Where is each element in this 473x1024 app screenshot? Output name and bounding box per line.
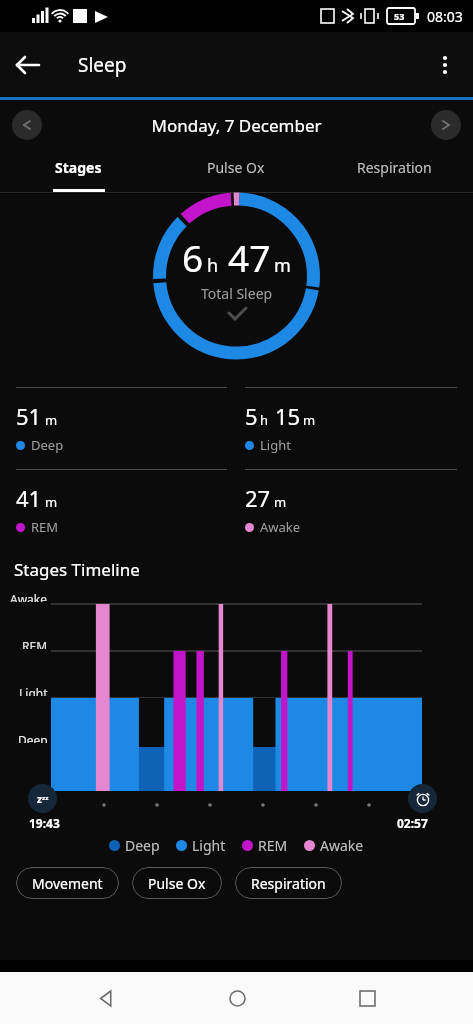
staticText: 51 — [16, 401, 42, 431]
button[interactable]: 27 — [245, 469, 457, 536]
staticText: 5 — [245, 401, 258, 431]
staticText: h — [260, 411, 269, 429]
staticText: Total Sleep — [201, 284, 273, 303]
staticText: Stages — [55, 158, 102, 177]
button[interactable]: Pulse Ox — [157, 156, 315, 192]
staticText: Stages Timeline — [14, 558, 140, 581]
staticText: m — [45, 493, 58, 511]
button[interactable]: Movement — [16, 867, 119, 899]
staticText: Awake — [10, 591, 48, 602]
staticText: REM — [258, 836, 288, 855]
staticText: 41 — [16, 483, 42, 513]
button[interactable]: Pulse Ox — [132, 867, 222, 899]
button[interactable]: 5 — [245, 387, 457, 454]
staticText: Respiration — [357, 158, 432, 177]
staticText: m — [274, 493, 287, 511]
staticText: Awake — [260, 518, 301, 536]
staticText: Awake — [320, 836, 364, 855]
staticText: Pulse Ox — [207, 158, 265, 177]
button[interactable]: Stages — [0, 156, 157, 192]
staticText: 08:03 — [427, 7, 463, 26]
staticText: m — [303, 411, 316, 429]
staticText: Deep — [31, 436, 64, 454]
button[interactable]: Back — [0, 37, 56, 93]
staticText: Pulse Ox — [148, 874, 206, 893]
staticText: Movement — [32, 874, 103, 893]
button[interactable]: Next day — [431, 110, 461, 140]
button[interactable]: 41 — [16, 469, 227, 536]
staticText: Light — [19, 685, 48, 696]
button[interactable]: Previous day — [12, 110, 42, 140]
staticText: h — [207, 253, 219, 278]
staticText: Monday, 7 December — [42, 114, 431, 137]
staticText: 27 — [245, 483, 271, 513]
staticText: Sleep — [78, 52, 127, 78]
button[interactable]: Wake time — [408, 784, 437, 813]
staticText: 19:43 — [29, 815, 60, 831]
staticText: m — [274, 253, 291, 278]
staticText: Respiration — [251, 874, 326, 893]
button[interactable]: 51 — [16, 387, 227, 454]
staticText: REM — [22, 638, 48, 649]
button[interactable]: Back — [82, 974, 130, 1022]
button[interactable]: Home — [213, 974, 261, 1022]
staticText: 02:57 — [397, 815, 428, 831]
button[interactable]: More options — [417, 37, 473, 93]
staticText: REM — [31, 518, 59, 536]
button[interactable]: Respiration — [315, 156, 473, 192]
staticText: 6 — [182, 232, 204, 282]
staticText: Light — [192, 836, 226, 855]
staticText: 15 — [275, 401, 301, 431]
staticText: zᶻᶻ — [37, 792, 49, 806]
button[interactable]: Respiration — [235, 867, 342, 899]
staticText: 53 — [394, 10, 405, 22]
staticText: Deep — [125, 836, 160, 855]
staticText: 47 — [228, 232, 271, 282]
staticText: Deep — [18, 732, 48, 743]
button[interactable]: Recent apps — [343, 974, 391, 1022]
staticText: m — [45, 411, 58, 429]
staticText: Light — [260, 436, 291, 454]
button[interactable]: Sleep start — [28, 784, 57, 813]
